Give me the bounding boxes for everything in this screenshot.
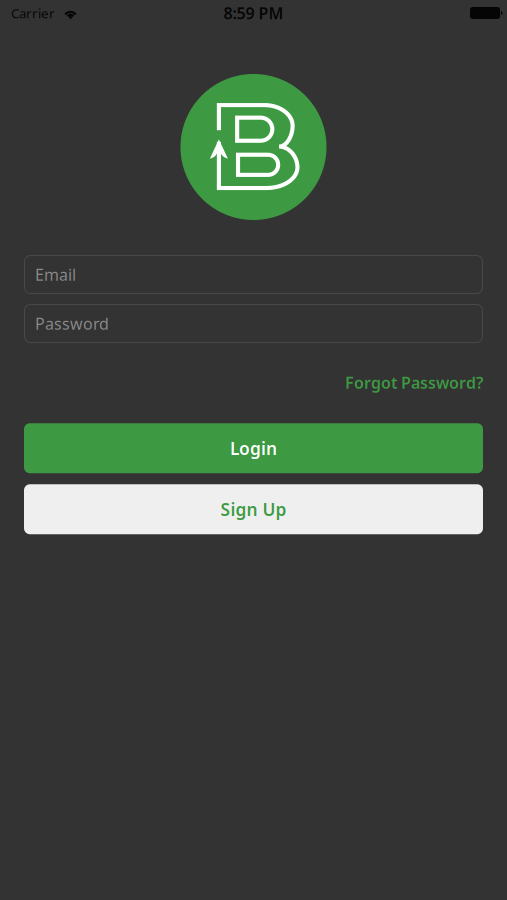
button[interactable]: Login — [0, 423, 507, 473]
staticText: Email — [35, 264, 76, 285]
staticText: Sign Up — [220, 498, 286, 521]
staticText: Forgot Password? — [345, 372, 483, 393]
staticText: Password — [35, 313, 109, 334]
staticText: 8:59 PM — [223, 2, 283, 24]
staticText: Login — [230, 437, 277, 460]
button[interactable]: Sign Up — [0, 484, 507, 534]
button[interactable]: Email — [0, 255, 507, 294]
staticText: Carrier — [11, 4, 55, 22]
button[interactable]: Forgot Password? — [345, 370, 483, 395]
button[interactable]: Password — [0, 304, 507, 343]
